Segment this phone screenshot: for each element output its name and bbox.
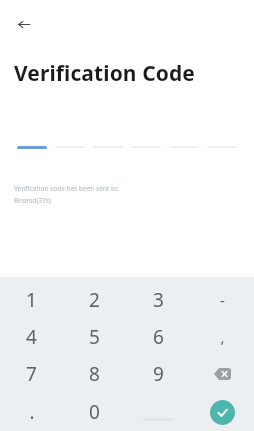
button[interactable] (51, 141, 89, 153)
staticText: 7 (26, 361, 37, 387)
staticText: 4 (26, 324, 37, 350)
button[interactable]: 7 (0, 355, 63, 393)
button[interactable]: 0 (63, 393, 126, 431)
button[interactable]: 8 (63, 355, 126, 393)
staticText: - (220, 290, 225, 310)
button[interactable]: 1 (0, 281, 63, 318)
staticText: 0 (89, 399, 100, 425)
button[interactable]: Back (8, 8, 40, 40)
button[interactable] (203, 141, 241, 153)
staticText: 6 (153, 324, 164, 350)
button[interactable]: - (190, 281, 254, 318)
staticText: Resend(37s) (14, 196, 51, 205)
button[interactable]: . (0, 393, 63, 431)
button[interactable]: Confirm (190, 393, 254, 431)
staticText: . (29, 399, 35, 425)
button[interactable]: 3 (126, 281, 190, 318)
button[interactable]: 9 (126, 355, 190, 393)
staticText: 2 (89, 287, 100, 313)
staticText: 3 (153, 287, 164, 313)
button[interactable]: Backspace (190, 355, 254, 393)
button[interactable]: 5 (63, 318, 126, 355)
staticText: 9 (153, 361, 164, 387)
button[interactable]: 6 (126, 318, 190, 355)
button[interactable]: 4 (0, 318, 63, 355)
staticText: Verification code has been sent to: (14, 184, 119, 193)
staticText: 8 (89, 361, 100, 387)
staticText: 1 (26, 287, 37, 313)
button[interactable]: 2 (63, 281, 126, 318)
staticText: 5 (89, 324, 100, 350)
button[interactable] (127, 141, 165, 153)
button[interactable] (13, 141, 51, 153)
button[interactable] (89, 141, 127, 153)
staticText: , (220, 327, 225, 347)
staticText: Verification Code (14, 59, 195, 88)
button[interactable]: , (190, 318, 254, 355)
button[interactable] (165, 141, 203, 153)
button[interactable]: Resend(37s) (14, 196, 51, 205)
